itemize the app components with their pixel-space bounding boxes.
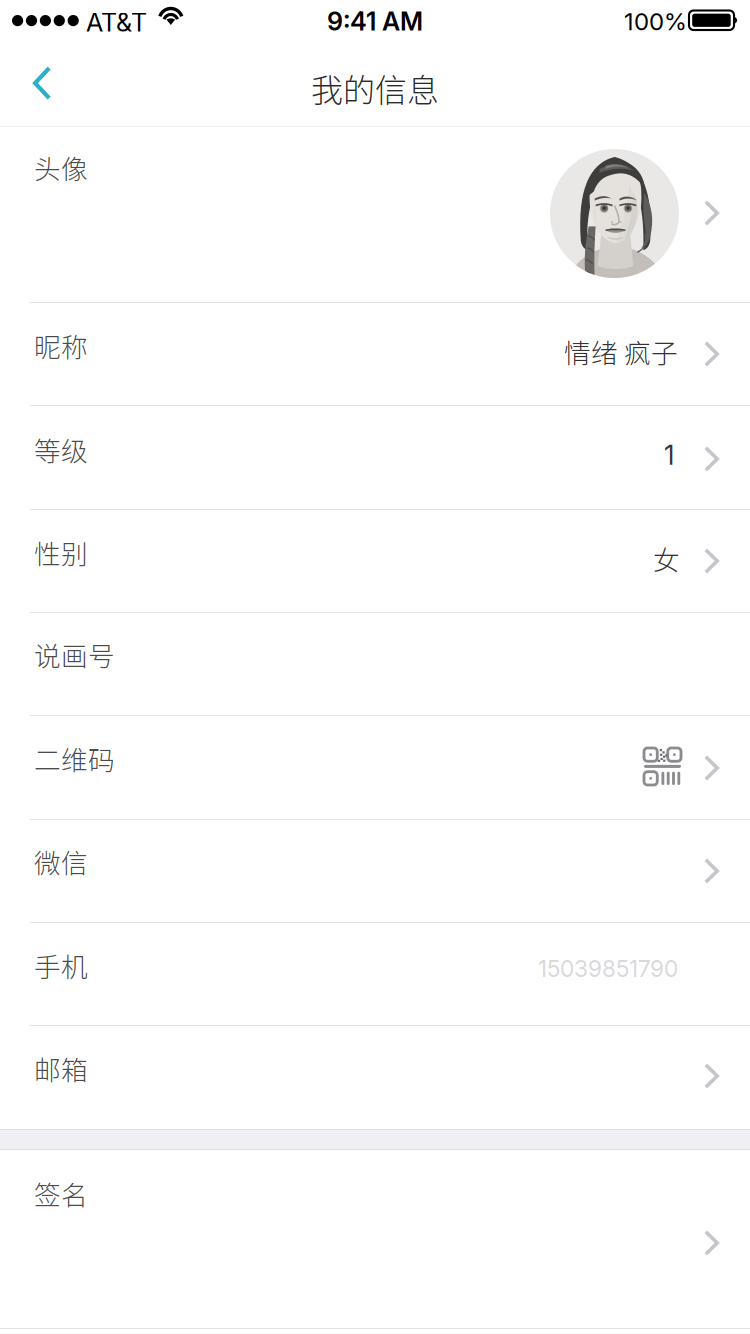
staticText: 头像 — [34, 148, 88, 187]
staticText: 邮箱 — [34, 1049, 88, 1088]
staticText: 手机 — [34, 946, 88, 985]
button[interactable]: 微信 — [0, 820, 750, 923]
button[interactable]: 二维码 — [0, 716, 750, 820]
staticText: 昵称 — [34, 326, 88, 365]
staticText: 等级 — [34, 430, 88, 469]
button[interactable]: 邮箱 — [0, 1026, 750, 1129]
staticText: 1 — [664, 439, 674, 471]
staticText: 说画号 — [34, 635, 115, 674]
button[interactable]: 说画号 — [0, 613, 750, 716]
staticText: AT&T — [86, 7, 147, 38]
button[interactable]: 签名 — [0, 1150, 750, 1329]
staticText: 情绪 疯子 — [564, 332, 678, 371]
button[interactable]: 头像 — [0, 127, 750, 303]
button[interactable]: 性别 — [0, 510, 750, 613]
staticText: 二维码 — [34, 739, 115, 778]
staticText: 性别 — [34, 533, 88, 572]
staticText: 女 — [653, 539, 680, 578]
button[interactable]: 手机 — [0, 923, 750, 1026]
staticText: 签名 — [34, 1174, 88, 1213]
staticText: 100% — [624, 7, 687, 36]
staticText: 15039851790 — [538, 955, 678, 982]
staticText: 我的信息 — [311, 65, 439, 111]
button[interactable]: 等级 — [0, 406, 750, 510]
button[interactable]: 昵称 — [0, 303, 750, 406]
staticText: 微信 — [34, 842, 88, 881]
button[interactable]: Back — [0, 40, 88, 127]
staticText: 9:41 AM — [327, 6, 423, 37]
